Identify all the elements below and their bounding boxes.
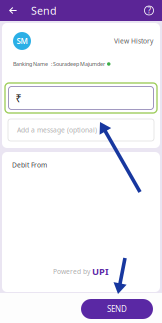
staticText: ? bbox=[147, 5, 150, 16]
button[interactable]: SEND bbox=[81, 299, 153, 319]
staticText: UPI bbox=[92, 265, 109, 278]
staticText: View History bbox=[114, 37, 153, 45]
staticText: Add a message (optional) bbox=[17, 126, 97, 134]
button[interactable]: View History bbox=[114, 37, 153, 45]
staticText: Debit From bbox=[12, 161, 47, 169]
staticText: SM bbox=[16, 36, 27, 46]
staticText: SEND bbox=[107, 304, 127, 314]
button[interactable]: Help bbox=[142, 0, 156, 21]
staticText: Powered by bbox=[53, 267, 90, 276]
staticText: ₹ bbox=[15, 91, 21, 105]
button[interactable]: Back bbox=[5, 0, 21, 21]
staticText: Banking Name : Souradeep Majumder bbox=[13, 60, 105, 68]
staticText: Send bbox=[31, 3, 57, 18]
